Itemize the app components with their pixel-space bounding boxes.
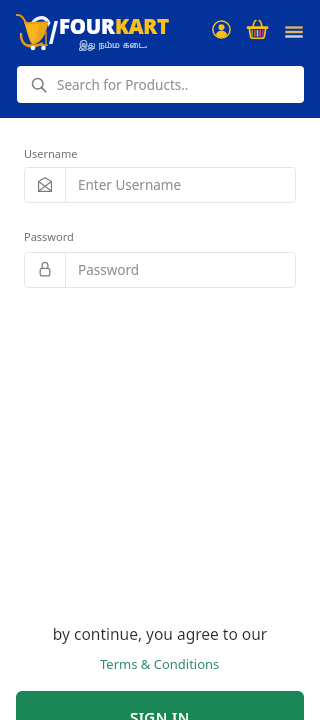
staticText: Enter Username (78, 176, 182, 194)
button[interactable]: Enter Username (24, 167, 296, 203)
staticText: by continue, you agree to our (0, 623, 320, 644)
button[interactable]: Password (24, 252, 296, 288)
button[interactable]: Cart (241, 13, 273, 45)
staticText: SIGN IN (130, 707, 190, 720)
button[interactable]: Search for Products.. (17, 66, 304, 103)
staticText: இது நம்ம கடை. (78, 37, 148, 51)
staticText: Password (78, 261, 140, 279)
button[interactable]: Menu (276, 13, 308, 45)
button[interactable]: Terms & Conditions (100, 655, 220, 673)
button[interactable]: SIGN IN (16, 691, 304, 720)
staticText: Password (24, 229, 74, 244)
staticText: Search for Products.. (57, 76, 189, 94)
staticText: FOUR (59, 12, 115, 40)
staticText: Username (24, 146, 78, 161)
button[interactable]: Account (205, 13, 237, 45)
staticText: KART (115, 12, 169, 40)
